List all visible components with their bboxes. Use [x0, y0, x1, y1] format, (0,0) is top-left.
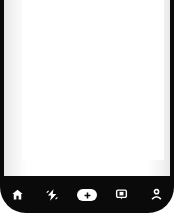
button[interactable]: Create	[69, 176, 104, 213]
button[interactable]: Profile	[139, 176, 174, 213]
button[interactable]: Messages	[104, 176, 139, 213]
button[interactable]: Home	[0, 176, 34, 213]
button[interactable]: Activity	[34, 176, 69, 213]
